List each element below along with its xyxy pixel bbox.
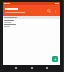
button[interactable] [3, 16, 60, 19]
button[interactable]: Home [30, 66, 34, 70]
button[interactable] [5, 8, 45, 13]
button[interactable] [3, 23, 60, 27]
button[interactable]: Search [45, 7, 52, 14]
button[interactable]: More options [52, 8, 58, 14]
button[interactable]: Add [52, 56, 58, 62]
button[interactable]: Back [14, 66, 18, 70]
button[interactable] [3, 19, 60, 23]
button[interactable]: Recents [45, 66, 49, 70]
